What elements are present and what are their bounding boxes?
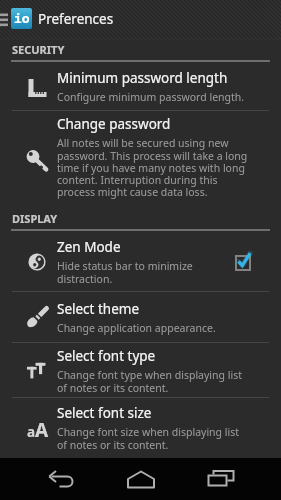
staticText: SECURITY bbox=[12, 42, 65, 57]
staticText: Change password bbox=[57, 115, 171, 133]
button[interactable]: Zen Mode bbox=[0, 231, 281, 292]
staticText: Select font size bbox=[57, 404, 152, 422]
staticText: Zen Mode bbox=[57, 238, 121, 256]
button[interactable]: Select font type bbox=[0, 343, 281, 398]
staticText: DISPLAY bbox=[12, 211, 58, 226]
button[interactable] bbox=[21, 458, 101, 500]
button[interactable]: io bbox=[11, 8, 32, 29]
staticText: io bbox=[14, 9, 30, 27]
button[interactable]: Change password bbox=[0, 111, 281, 203]
staticText: Select theme bbox=[57, 300, 140, 318]
staticText: Hide status bar to minimize distraction. bbox=[57, 259, 193, 286]
staticText: All notes will be secured using new pass… bbox=[57, 136, 248, 199]
button[interactable]: aA bbox=[0, 398, 281, 458]
button[interactable]: Select theme bbox=[0, 292, 281, 343]
staticText: aA bbox=[27, 417, 47, 437]
staticText: Change font size when displaying list of… bbox=[57, 425, 240, 452]
staticText: Change application appearance. bbox=[57, 321, 216, 335]
staticText: Minimum password length bbox=[57, 69, 228, 87]
button[interactable] bbox=[101, 458, 181, 500]
staticText: Change font type when displaying list of… bbox=[57, 368, 242, 395]
staticText: Configure minimum password length. bbox=[57, 90, 245, 104]
staticText: Select font type bbox=[57, 347, 156, 365]
button[interactable]: Minimum password length bbox=[0, 62, 281, 111]
staticText: Preferences bbox=[38, 10, 114, 28]
button[interactable] bbox=[181, 458, 261, 500]
